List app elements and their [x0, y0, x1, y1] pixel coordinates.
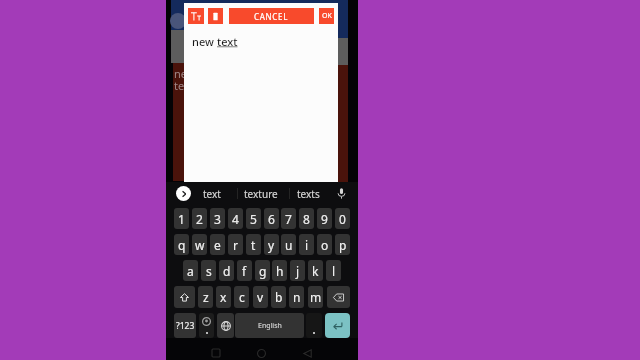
staticText: f	[242, 263, 247, 279]
button[interactable]: z	[198, 286, 213, 308]
staticText: e	[214, 237, 221, 253]
staticText: y	[268, 237, 275, 253]
staticText: d	[223, 263, 231, 279]
staticText: text	[203, 187, 221, 201]
button[interactable]: texts	[290, 184, 327, 203]
button[interactable]: Recents	[208, 345, 224, 360]
button[interactable]: 2	[192, 208, 207, 229]
button[interactable]: text	[194, 184, 230, 203]
staticText: 1	[178, 211, 185, 227]
staticText: ne te	[174, 66, 188, 93]
staticText: x	[220, 289, 227, 305]
button[interactable]: c	[234, 286, 249, 308]
button[interactable]: b	[271, 286, 286, 308]
button[interactable]: r	[228, 234, 243, 255]
staticText: l	[332, 263, 336, 279]
staticText: p	[339, 237, 347, 253]
staticText: 4	[232, 211, 239, 227]
button[interactable]: texture	[238, 184, 284, 203]
button[interactable]: Voice input	[333, 184, 349, 203]
button[interactable]: m	[308, 286, 323, 308]
staticText: g	[259, 263, 267, 279]
staticText: text	[217, 34, 238, 49]
button[interactable]: Language	[217, 313, 234, 338]
staticText: new	[192, 34, 217, 49]
staticText: w	[195, 237, 205, 253]
button[interactable]: a	[183, 260, 198, 281]
staticText: ?123	[176, 320, 195, 332]
button[interactable]: 3	[210, 208, 225, 229]
button[interactable]: 0	[335, 208, 350, 229]
button[interactable]: s	[201, 260, 216, 281]
button[interactable]: q	[174, 234, 189, 255]
button[interactable]: Backspace	[327, 286, 350, 308]
button[interactable]: n	[289, 286, 304, 308]
button[interactable]: e	[210, 234, 225, 255]
staticText: t	[251, 237, 256, 253]
button[interactable]: 1	[174, 208, 189, 229]
button[interactable]: Emoji and comma	[199, 313, 214, 338]
button[interactable]: 5	[246, 208, 261, 229]
staticText: h	[276, 263, 284, 279]
button[interactable]: Text style	[188, 8, 204, 24]
staticText: j	[296, 263, 300, 279]
staticText: 6	[268, 211, 275, 227]
button[interactable]: w	[192, 234, 207, 255]
button[interactable]: 4	[228, 208, 243, 229]
button[interactable]: j	[290, 260, 305, 281]
staticText: CANCEL	[254, 11, 289, 22]
button[interactable]: y	[264, 234, 279, 255]
staticText: texts	[297, 187, 320, 201]
staticText: o	[321, 237, 329, 253]
staticText: 7	[285, 211, 292, 227]
staticText: i	[305, 237, 309, 253]
staticText: v	[257, 289, 264, 305]
staticText: 9	[321, 211, 328, 227]
button[interactable]: Back	[299, 345, 315, 360]
staticText: texture	[244, 187, 278, 201]
button[interactable]: k	[308, 260, 323, 281]
button[interactable]: ?123	[174, 313, 196, 338]
button[interactable]: Enter	[325, 313, 350, 338]
button[interactable]: Home	[253, 345, 269, 360]
button[interactable]: Shift	[174, 286, 195, 308]
button[interactable]: CANCEL	[229, 8, 314, 24]
button[interactable]: 6	[264, 208, 279, 229]
button[interactable]: Delete	[208, 8, 223, 24]
button[interactable]: i	[299, 234, 314, 255]
staticText: English	[258, 321, 282, 331]
button[interactable]: f	[237, 260, 252, 281]
button[interactable]: u	[281, 234, 296, 255]
staticText: n	[293, 289, 301, 305]
staticText: m	[310, 289, 322, 305]
staticText: q	[178, 237, 186, 253]
button[interactable]: English	[235, 313, 304, 338]
button[interactable]: h	[272, 260, 287, 281]
staticText: r	[233, 237, 238, 253]
button[interactable]: Expand suggestions	[176, 186, 191, 201]
staticText: z	[203, 289, 209, 305]
button[interactable]: g	[255, 260, 270, 281]
staticText: a	[187, 263, 194, 279]
staticText: 8	[303, 211, 310, 227]
staticText: 3	[214, 211, 221, 227]
button[interactable]: 7	[281, 208, 296, 229]
staticText: b	[275, 289, 283, 305]
button[interactable]: 9	[317, 208, 332, 229]
button[interactable]: o	[317, 234, 332, 255]
button[interactable]: 8	[299, 208, 314, 229]
button[interactable]: t	[246, 234, 261, 255]
staticText: OK	[322, 11, 332, 21]
staticText: 2	[196, 211, 203, 227]
button[interactable]: Period	[306, 313, 322, 338]
button[interactable]: v	[253, 286, 268, 308]
button[interactable]: x	[216, 286, 231, 308]
button[interactable]: d	[219, 260, 234, 281]
button[interactable]: l	[326, 260, 341, 281]
staticText: c	[239, 289, 245, 305]
staticText: 0	[339, 211, 346, 227]
staticText: s	[206, 263, 212, 279]
staticText: 5	[250, 211, 257, 227]
button[interactable]: OK	[319, 8, 334, 24]
button[interactable]: p	[335, 234, 350, 255]
